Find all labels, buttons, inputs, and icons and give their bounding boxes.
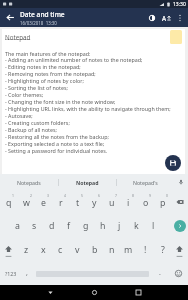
staticText: s	[32, 220, 37, 232]
staticText: Notepad	[5, 33, 31, 41]
staticText: k	[134, 220, 139, 232]
button[interactable]: 7	[103, 190, 120, 214]
staticText: 4	[64, 193, 66, 198]
button[interactable]: 2	[18, 190, 35, 214]
button[interactable]: Back	[28, 285, 72, 300]
staticText: w	[23, 197, 30, 209]
staticText: z	[24, 244, 29, 256]
button[interactable]: v	[69, 238, 86, 262]
button[interactable]: j	[111, 214, 128, 238]
button[interactable]: More options	[173, 8, 186, 27]
staticText: c	[58, 244, 63, 256]
button[interactable]: Notepad	[5, 33, 170, 41]
button[interactable]: d	[43, 214, 60, 238]
button[interactable]: b	[86, 238, 103, 262]
button[interactable]: Notepad	[59, 174, 116, 190]
staticText: Notepad's	[133, 179, 158, 186]
staticText: 7	[115, 193, 117, 198]
staticText: i	[127, 197, 130, 209]
staticText: Notepad	[76, 179, 99, 186]
staticText: q	[6, 197, 12, 209]
button[interactable]: ?123	[0, 262, 21, 285]
button[interactable]: Notepads	[0, 174, 58, 190]
staticText: 5	[81, 193, 83, 198]
staticText: b	[92, 244, 98, 256]
button[interactable]: Font size	[159, 8, 173, 27]
button[interactable]: 4	[52, 190, 69, 214]
button[interactable]: n	[103, 238, 120, 262]
button[interactable]: Home	[72, 285, 116, 300]
staticText: l	[152, 220, 155, 232]
staticText: t	[76, 197, 80, 209]
staticText: p	[160, 197, 166, 209]
staticText: Date and time	[20, 10, 65, 19]
button[interactable]: 8	[120, 190, 137, 214]
staticText: 16/03/2018 13:30	[20, 20, 57, 26]
staticText: Notepads	[17, 179, 41, 186]
staticText: o	[143, 197, 149, 209]
button[interactable]: 9	[137, 190, 154, 214]
staticText: a	[15, 220, 20, 232]
button[interactable]: Back	[0, 8, 20, 27]
button[interactable]: .	[152, 262, 168, 285]
staticText: m	[124, 244, 133, 256]
staticText: f	[67, 220, 71, 232]
button[interactable]: Shift	[0, 238, 17, 262]
staticText: v	[75, 244, 80, 256]
staticText: h	[100, 220, 106, 232]
staticText: 8	[132, 193, 134, 198]
button[interactable]: ?	[154, 238, 171, 262]
button[interactable]: Theme	[145, 8, 159, 27]
button[interactable]: h	[94, 214, 111, 238]
button[interactable]: 6	[86, 190, 103, 214]
button[interactable]: Note colour	[170, 30, 182, 44]
button[interactable]: Recents	[116, 285, 160, 300]
staticText: ,	[26, 268, 28, 278]
staticText: !	[144, 244, 147, 256]
button[interactable]: 3	[35, 190, 52, 214]
button[interactable]: 5	[69, 190, 86, 214]
staticText: .	[159, 268, 161, 278]
button[interactable]: 1	[0, 190, 18, 214]
staticText: 13:30	[173, 1, 186, 8]
staticText: j	[118, 220, 121, 232]
button[interactable]: Emoji	[168, 262, 188, 285]
button[interactable]: s	[26, 214, 43, 238]
button[interactable]: x	[35, 238, 52, 262]
staticText: u	[109, 197, 115, 209]
staticText: y	[92, 197, 97, 209]
button[interactable]: 0	[154, 190, 171, 214]
staticText: ?123	[5, 270, 17, 277]
staticText: e	[41, 197, 46, 209]
button[interactable]: ,	[21, 262, 33, 285]
staticText: 1	[12, 193, 14, 198]
staticText: ?	[161, 244, 165, 256]
staticText: 9	[149, 193, 151, 198]
button[interactable]: k	[128, 214, 145, 238]
button[interactable]: Save	[165, 155, 181, 171]
button[interactable]: f	[60, 214, 77, 238]
staticText: g	[83, 220, 89, 232]
button[interactable]: Notepad's	[117, 174, 174, 190]
staticText: The main features of the notepad: - Addi…	[5, 50, 171, 155]
button[interactable]: Voice input	[174, 174, 188, 190]
button[interactable]: c	[52, 238, 69, 262]
staticText: n	[109, 244, 115, 256]
staticText: 0	[166, 193, 168, 198]
button[interactable]: l	[145, 214, 162, 238]
button[interactable]: m	[120, 238, 137, 262]
button[interactable]: Enter	[171, 214, 188, 238]
button[interactable]: z	[17, 238, 35, 262]
button[interactable]: Shift	[171, 238, 188, 262]
staticText: 3	[47, 193, 49, 198]
staticText: 2	[30, 193, 32, 198]
staticText: r	[59, 197, 63, 209]
button[interactable]: Space	[33, 262, 152, 285]
button[interactable]: g	[77, 214, 94, 238]
button[interactable]: Backspace	[171, 190, 188, 214]
button[interactable]: !	[137, 238, 154, 262]
staticText: x	[41, 244, 46, 256]
staticText: 6	[98, 193, 100, 198]
staticText: A	[162, 14, 167, 22]
button[interactable]: a	[9, 214, 26, 238]
